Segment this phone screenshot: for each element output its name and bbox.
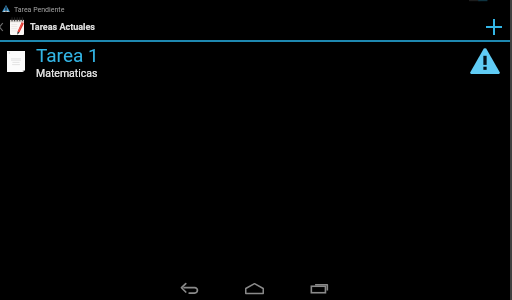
button[interactable]: Back [160, 272, 218, 300]
button[interactable]: Add task [478, 13, 512, 40]
staticText: Tareas Actuales [30, 22, 95, 33]
button[interactable]: Home [225, 272, 283, 300]
staticText: Tarea 1 [36, 44, 99, 66]
button[interactable]: Tarea 1 [0, 42, 512, 84]
staticText: Tarea Pendiente [14, 6, 65, 14]
button[interactable]: Recent apps [290, 272, 348, 300]
staticText: Matematicas [36, 67, 98, 79]
button[interactable]: Navigate up [0, 13, 11, 40]
button[interactable]: Task is pending [470, 48, 500, 74]
